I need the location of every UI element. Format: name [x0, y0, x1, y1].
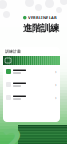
staticText: VERBLINE LAB	[28, 15, 57, 20]
staticText: 2	[2, 116, 22, 144]
staticText: ›	[55, 81, 57, 88]
staticText: ›	[55, 68, 57, 75]
staticText: ›	[55, 94, 57, 101]
staticText: 訓練計畫	[5, 49, 21, 54]
staticText: 進階訓練	[23, 22, 59, 34]
